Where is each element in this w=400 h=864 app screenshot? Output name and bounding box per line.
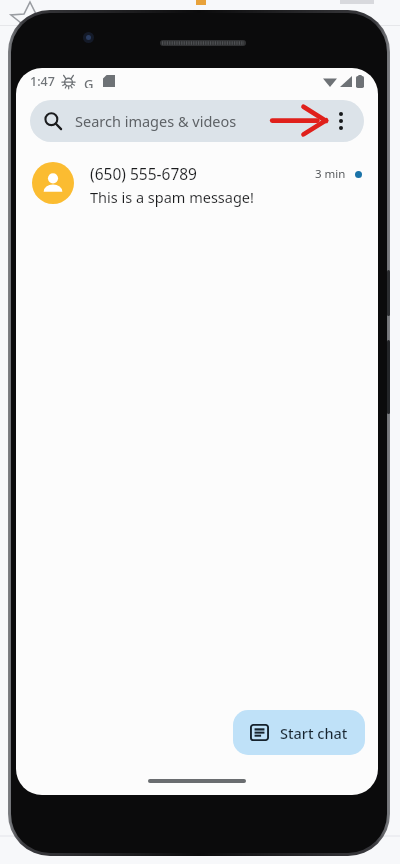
staticText: G <box>84 75 94 88</box>
staticText: Start chat <box>280 723 348 743</box>
button[interactable]: Start chat <box>233 710 365 755</box>
button[interactable]: Search images & videos <box>30 100 364 142</box>
staticText: Search images & videos <box>75 111 237 131</box>
button[interactable]: More options <box>324 104 358 138</box>
staticText: (650) 555-6789 <box>90 163 197 184</box>
staticText: This is a spam message! <box>90 187 254 207</box>
button[interactable]: (650) 555-6789 <box>16 158 378 215</box>
staticText: 1:47 <box>30 73 55 90</box>
staticText: 3 min <box>315 166 346 182</box>
